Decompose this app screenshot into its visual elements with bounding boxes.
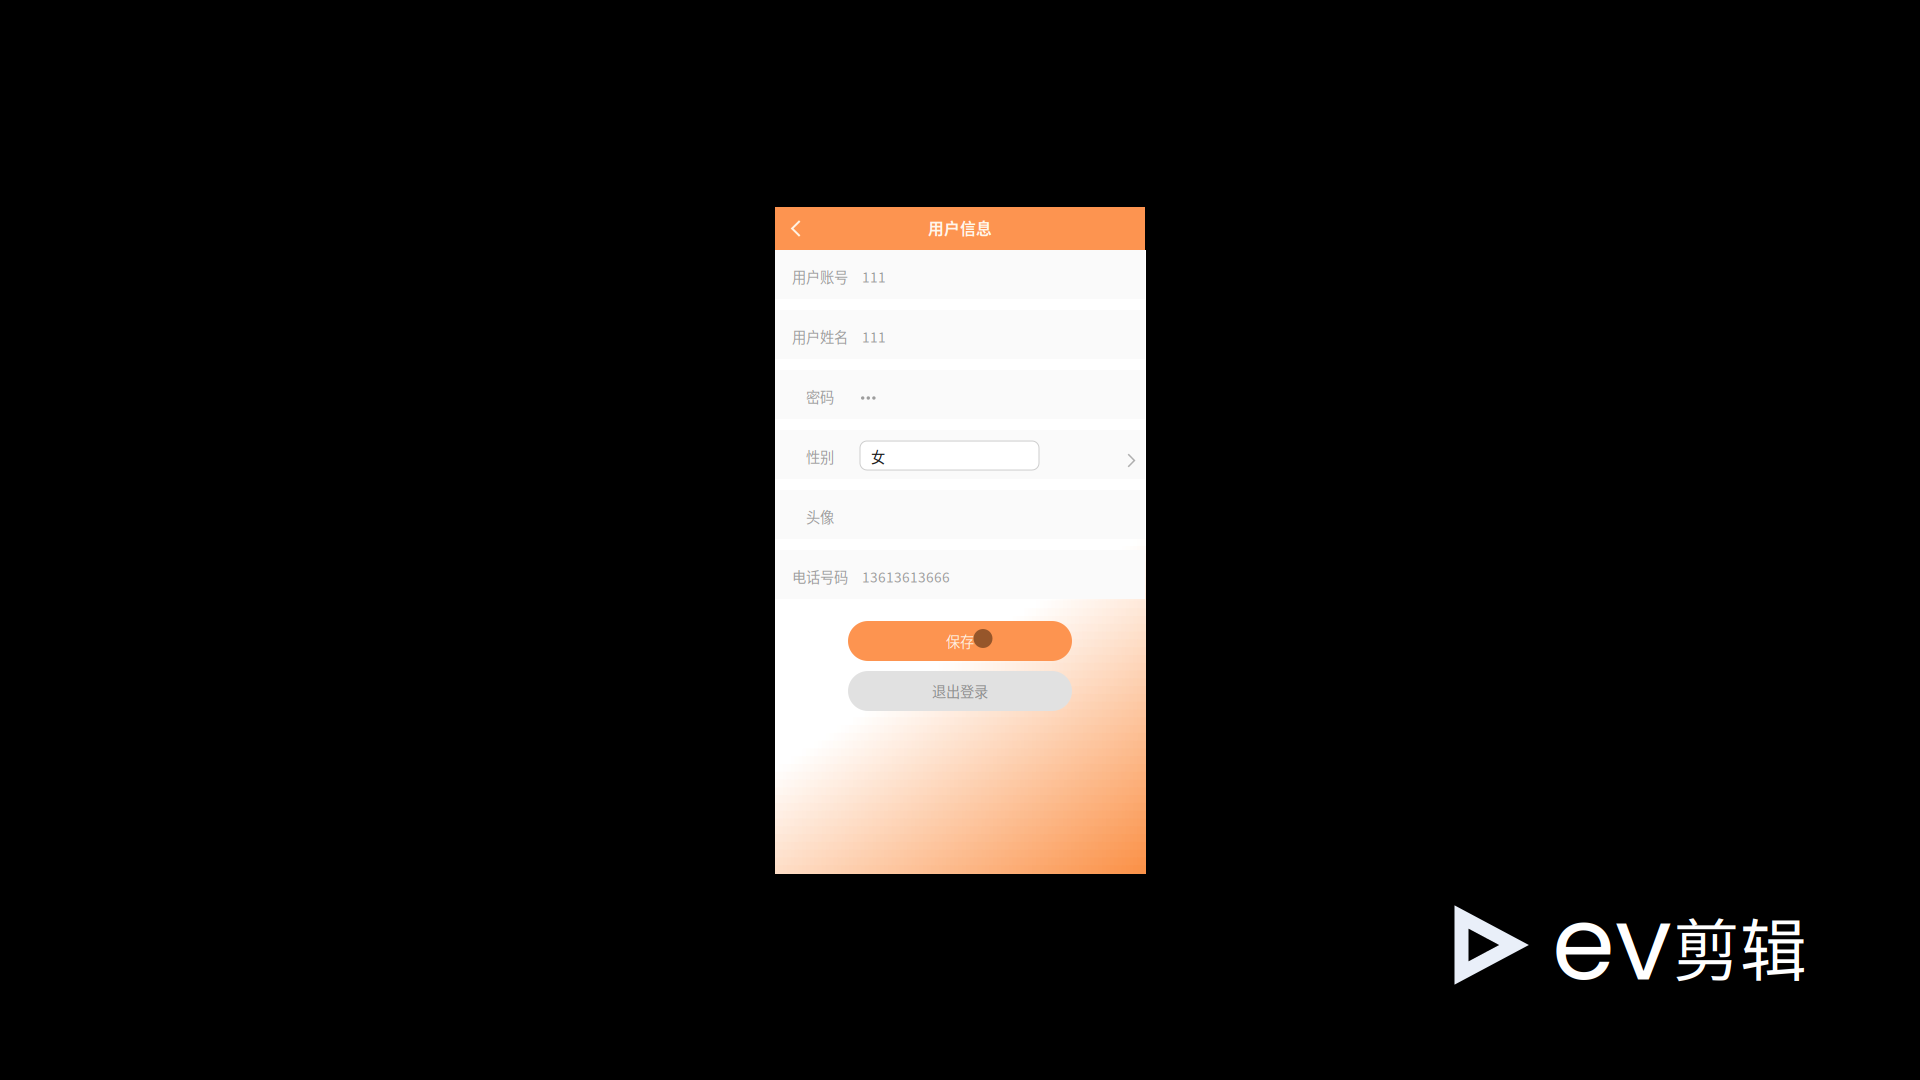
button[interactable]: 女 <box>860 441 1039 470</box>
staticText: 用户姓名 <box>792 326 848 347</box>
staticText: 退出登录 <box>932 681 988 701</box>
staticText: ev <box>1552 873 1672 1015</box>
button[interactable]: 退出登录 <box>848 671 1072 711</box>
staticText: 电话号码 <box>792 566 848 587</box>
staticText: 111 <box>862 327 886 346</box>
staticText: 13613613666 <box>862 567 950 586</box>
staticText: 111 <box>862 267 886 286</box>
button[interactable]: 保存 <box>848 621 1072 661</box>
button[interactable]: Back <box>777 207 815 250</box>
staticText: 性别 <box>806 446 834 467</box>
staticText: 用户账号 <box>792 266 848 287</box>
staticText: 女 <box>871 446 885 467</box>
staticText: 用户信息 <box>928 216 992 239</box>
staticText: 密码 <box>806 386 834 407</box>
staticText: 保存 <box>946 631 974 651</box>
staticText: 头像 <box>806 506 834 527</box>
staticText: 剪辑 <box>1673 898 1807 994</box>
